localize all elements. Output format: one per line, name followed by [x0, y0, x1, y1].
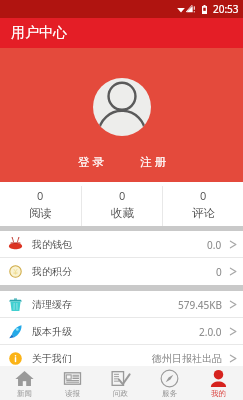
button[interactable]: 我的钱包	[0, 231, 243, 258]
button[interactable]: 我的	[194, 366, 243, 400]
button[interactable]: 关于我们	[0, 345, 243, 372]
staticText: 清理缓存	[32, 298, 72, 311]
staticText: 收藏	[111, 206, 134, 220]
staticText: 关于我们	[32, 352, 72, 365]
button[interactable]: Profile avatar	[93, 78, 151, 136]
button[interactable]: 0	[0, 182, 81, 226]
button[interactable]: 版本升级	[0, 318, 243, 345]
button[interactable]: 0	[163, 182, 243, 226]
staticText: 评论	[192, 206, 215, 220]
button[interactable]: 读报	[48, 366, 96, 400]
staticText: 0	[200, 188, 207, 203]
staticText: 问政	[113, 389, 128, 398]
button[interactable]: 问政	[96, 366, 145, 400]
staticText: 新闻	[17, 389, 32, 398]
staticText: 我的积分	[32, 265, 72, 278]
staticText: 579.45KB	[178, 298, 222, 312]
staticText: 德州日报社出品	[152, 352, 222, 365]
button[interactable]: 0	[82, 182, 162, 226]
staticText: 读报	[65, 389, 80, 398]
staticText: 版本升级	[32, 325, 72, 338]
button[interactable]: 新闻	[0, 366, 48, 400]
staticText: 2.0.0	[199, 325, 222, 339]
button[interactable]: 我的积分	[0, 258, 243, 285]
staticText: 0.0	[207, 238, 222, 252]
staticText: 0	[37, 188, 44, 203]
staticText: 注 册	[140, 154, 166, 170]
staticText: 用户中心	[11, 24, 67, 42]
button[interactable]: 注 册	[135, 152, 171, 172]
staticText: 我的	[211, 389, 226, 398]
button[interactable]: 登 录	[73, 152, 109, 172]
staticText: 0	[216, 265, 222, 279]
staticText: 登 录	[78, 154, 104, 170]
button[interactable]: 服务	[145, 366, 194, 400]
staticText: 20:53	[213, 2, 239, 16]
staticText: 0	[119, 188, 126, 203]
button[interactable]: 清理缓存	[0, 291, 243, 318]
staticText: 我的钱包	[32, 238, 72, 251]
staticText: 服务	[162, 389, 177, 398]
staticText: 阅读	[29, 206, 52, 220]
